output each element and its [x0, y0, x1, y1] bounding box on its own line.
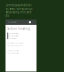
- staticText: document.md: [7, 21, 16, 23]
- staticText: quoted text line a: [9, 32, 19, 34]
- staticText: quoted line c: [9, 37, 17, 39]
- staticText: Section heading: [7, 27, 30, 30]
- staticText: normal paragraph text: [7, 42, 23, 44]
- staticText: Lorem ipsum dolor sit amet consectetur a…: [5, 3, 32, 18]
- staticText: and one more line: [7, 52, 19, 54]
- staticText: another short line: [7, 50, 19, 52]
- staticText: quoted text line b: [9, 35, 19, 37]
- staticText: more body copy here: [7, 45, 23, 47]
